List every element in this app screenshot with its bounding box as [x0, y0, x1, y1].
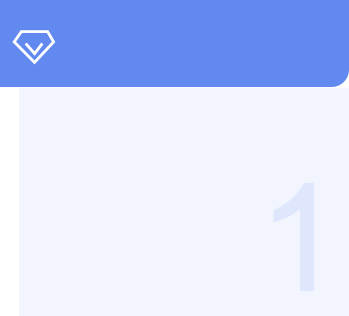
button[interactable]: Home [13, 30, 55, 64]
